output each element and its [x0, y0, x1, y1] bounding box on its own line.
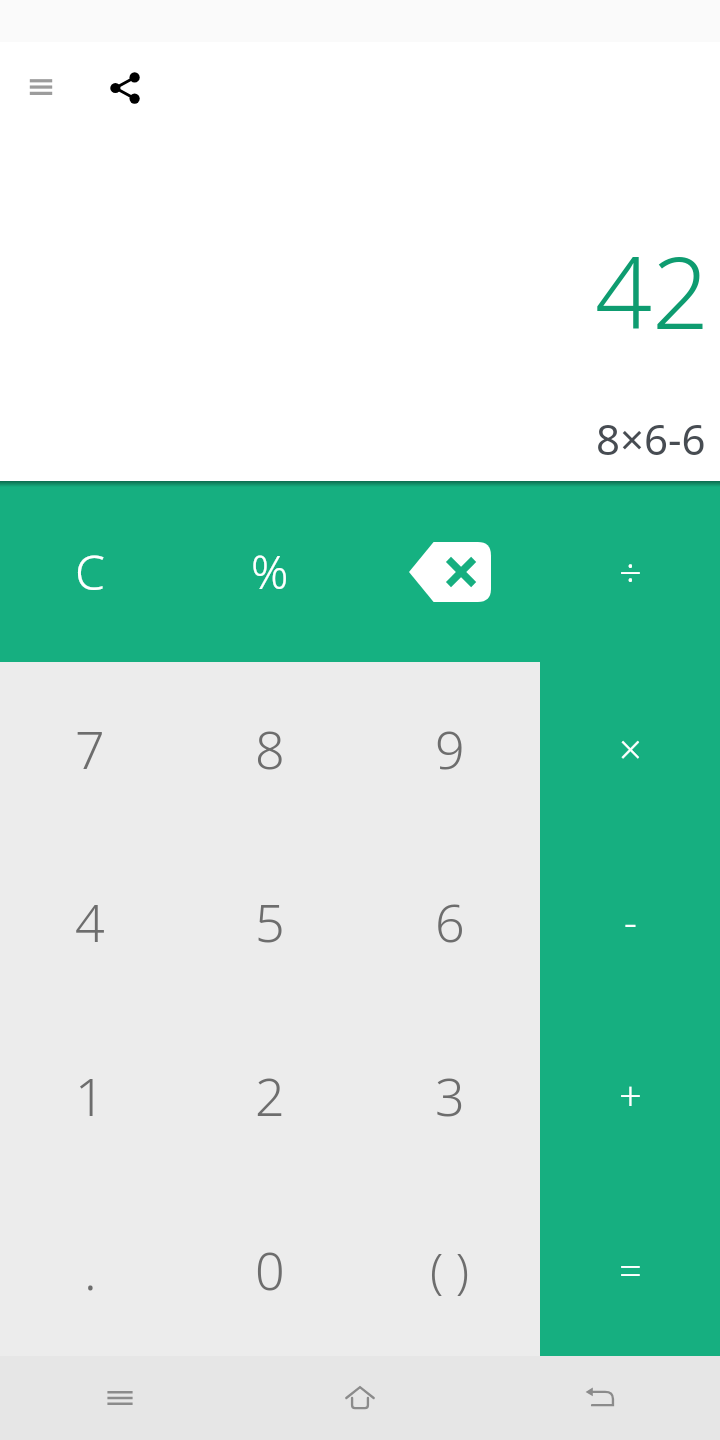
staticText: 2	[255, 1060, 285, 1131]
staticText: ÷	[619, 544, 642, 598]
button[interactable]: C	[0, 481, 180, 662]
staticText: -	[624, 894, 637, 948]
button[interactable]: Share	[98, 61, 152, 115]
button[interactable]: ÷	[540, 481, 720, 661]
button[interactable]: Backspace	[360, 481, 540, 662]
staticText: =	[619, 1242, 642, 1296]
staticText: 8×6-6	[596, 410, 706, 467]
button[interactable]: =	[540, 1182, 720, 1356]
button[interactable]: 8	[180, 662, 360, 835]
staticText: 3	[435, 1060, 465, 1131]
staticText: ×	[619, 721, 642, 775]
button[interactable]: 9	[360, 662, 540, 835]
button[interactable]: 0	[180, 1182, 360, 1356]
button[interactable]: +	[540, 1008, 720, 1182]
staticText: %	[251, 540, 289, 603]
staticText: 7	[75, 713, 105, 784]
button[interactable]: ×	[540, 661, 720, 834]
button[interactable]: 6	[360, 835, 540, 1008]
staticText: .	[84, 1234, 97, 1305]
button[interactable]: ( )	[360, 1182, 540, 1356]
button[interactable]: Recent apps	[0, 1356, 240, 1440]
staticText: ( )	[430, 1237, 470, 1302]
staticText: C	[75, 539, 105, 604]
button[interactable]: 2	[180, 1008, 360, 1182]
staticText: 5	[255, 886, 285, 957]
staticText: 6	[435, 886, 465, 957]
staticText: 4	[75, 886, 105, 957]
button[interactable]: 5	[180, 835, 360, 1008]
button[interactable]: -	[540, 834, 720, 1008]
button[interactable]: 1	[0, 1008, 180, 1182]
staticText: 0	[255, 1234, 285, 1305]
staticText: 1	[75, 1060, 105, 1131]
staticText: 42	[595, 222, 710, 358]
staticText: +	[619, 1068, 642, 1122]
button[interactable]: 7	[0, 662, 180, 835]
button[interactable]: %	[180, 481, 360, 662]
staticText: 8	[255, 713, 285, 784]
button[interactable]: 3	[360, 1008, 540, 1182]
button[interactable]: Menu	[14, 60, 68, 114]
staticText: 9	[435, 713, 465, 784]
button[interactable]: Home	[240, 1356, 480, 1440]
button[interactable]: 4	[0, 835, 180, 1008]
button[interactable]: Back	[480, 1356, 720, 1440]
